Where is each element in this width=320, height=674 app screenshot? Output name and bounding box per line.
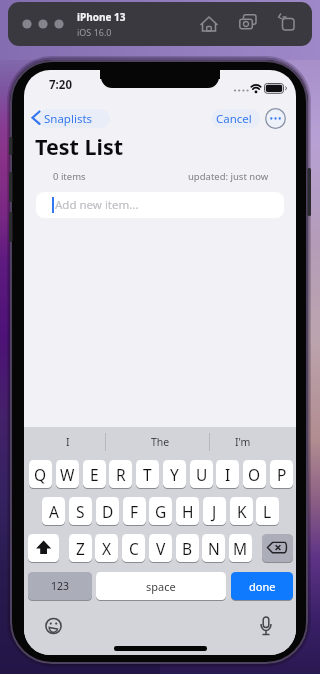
button[interactable] — [262, 534, 293, 562]
staticText: G — [155, 501, 167, 522]
staticText: 0 items — [53, 170, 86, 182]
button[interactable]: V — [149, 534, 172, 562]
button[interactable]: iPhone 13 — [8, 2, 312, 46]
button[interactable] — [28, 534, 59, 562]
staticText: T — [143, 464, 152, 485]
button[interactable]: I — [38, 433, 98, 451]
staticText: M — [233, 538, 248, 559]
staticText: Snaplists — [44, 111, 93, 127]
staticText: 123 — [51, 579, 70, 593]
staticText: The — [151, 435, 170, 449]
button[interactable]: N — [202, 534, 225, 562]
button[interactable]: C — [122, 534, 145, 562]
staticText: V — [156, 538, 166, 559]
button[interactable]: E — [83, 460, 106, 488]
button[interactable]: M — [229, 534, 252, 562]
button[interactable]: X — [95, 534, 118, 562]
staticText: C — [129, 538, 139, 559]
staticText: L — [263, 501, 272, 522]
staticText: H — [182, 501, 194, 522]
staticText: R — [116, 464, 126, 485]
staticText: iPhone 13 — [77, 10, 126, 24]
staticText: B — [182, 538, 193, 559]
staticText: done — [249, 579, 276, 594]
button[interactable]: Y — [163, 460, 186, 488]
button[interactable]: U — [190, 460, 213, 488]
staticText: P — [277, 464, 287, 485]
button[interactable]: done — [231, 572, 293, 600]
button[interactable]: L — [256, 497, 279, 525]
staticText: A — [49, 501, 59, 522]
button[interactable]: Snaplists — [44, 110, 106, 127]
button[interactable]: G — [149, 497, 172, 525]
button[interactable]: W — [56, 460, 79, 488]
staticText: O — [248, 464, 261, 485]
button[interactable] — [266, 109, 286, 129]
staticText: Test List — [35, 132, 124, 158]
button[interactable]: T — [136, 460, 159, 488]
button[interactable]: S — [69, 497, 92, 525]
staticText: I — [66, 435, 70, 449]
staticText: U — [196, 464, 208, 485]
button[interactable]: I — [216, 460, 239, 488]
staticText: K — [237, 501, 247, 522]
button[interactable]: A — [42, 497, 65, 525]
button[interactable]: B — [176, 534, 199, 562]
staticText: F — [130, 501, 139, 522]
staticText: I'm — [235, 435, 251, 449]
button[interactable]: P — [270, 460, 293, 488]
staticText: D — [102, 501, 114, 522]
staticText: E — [90, 464, 99, 485]
button[interactable]: F — [123, 497, 146, 525]
button[interactable]: K — [230, 497, 253, 525]
button[interactable]: I'm — [213, 433, 273, 451]
staticText: Add new item... — [55, 197, 139, 213]
staticText: space — [146, 579, 176, 594]
button[interactable]: Q — [29, 460, 52, 488]
button[interactable]: R — [109, 460, 132, 488]
staticText: X — [102, 538, 112, 559]
button[interactable]: O — [243, 460, 266, 488]
staticText: iOS 16.0 — [77, 26, 112, 38]
staticText: updated: just now — [188, 170, 269, 182]
button[interactable]: D — [96, 497, 119, 525]
staticText: Y — [170, 464, 179, 485]
button[interactable]: J — [203, 497, 226, 525]
button[interactable] — [36, 192, 284, 218]
staticText: Z — [76, 538, 85, 559]
button[interactable]: H — [176, 497, 199, 525]
staticText: S — [76, 501, 85, 522]
staticText: N — [208, 538, 220, 559]
button[interactable]: The — [130, 433, 190, 451]
staticText: Q — [34, 464, 47, 485]
button[interactable]: Cancel — [216, 110, 256, 127]
button[interactable]: 123 — [28, 572, 92, 600]
staticText: 7:20 — [49, 77, 72, 93]
staticText: W — [60, 464, 75, 485]
staticText: Cancel — [216, 111, 252, 127]
button[interactable]: space — [96, 572, 226, 600]
button[interactable]: Z — [69, 534, 92, 562]
staticText: J — [212, 501, 217, 522]
staticText: I — [225, 464, 231, 485]
